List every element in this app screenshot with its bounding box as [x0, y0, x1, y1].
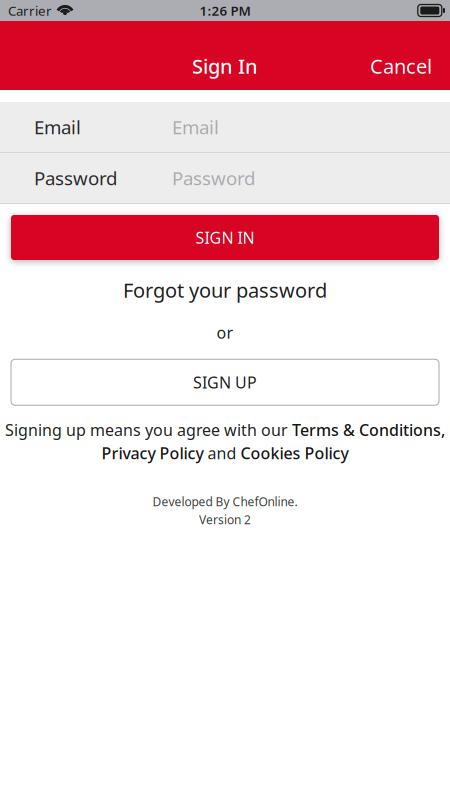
staticText: Sign In [192, 53, 258, 79]
staticText: Version 2 [199, 512, 251, 528]
staticText: Forgot your password [123, 277, 327, 303]
staticText: Cancel [370, 53, 432, 79]
staticText: or [216, 322, 233, 343]
staticText: Carrier [8, 2, 52, 19]
staticText: and [203, 442, 240, 464]
button[interactable]: Privacy Policy [101, 442, 203, 464]
staticText: Password [172, 166, 255, 190]
staticText: Password [34, 166, 117, 190]
staticText: SIGN UP [193, 372, 257, 393]
staticText: SIGN IN [195, 227, 254, 248]
staticText: Signing up means you agree with our [5, 419, 288, 440]
staticText: Developed By ChefOnline. [152, 494, 297, 510]
staticText: Cookies Policy [240, 442, 348, 464]
staticText: Email [172, 115, 219, 139]
staticText: Email [34, 115, 81, 139]
button[interactable]: Forgot your password [0, 268, 450, 312]
staticText: Terms & Conditions, [292, 419, 445, 440]
button[interactable]: Cookies Policy [240, 442, 348, 464]
staticText: Privacy Policy [101, 442, 203, 464]
button[interactable]: Terms & Conditions, [292, 419, 445, 440]
button[interactable]: SIGN UP [11, 359, 439, 405]
button[interactable]: Cancel [352, 44, 450, 88]
button[interactable]: SIGN IN [11, 215, 439, 260]
staticText: 1:26 PM [199, 2, 250, 19]
